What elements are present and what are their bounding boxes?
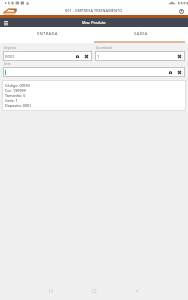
staticText: 001 - EMPRESA TREINAMENTO (65, 8, 123, 13)
staticText: Item (4, 62, 11, 66)
button[interactable]: Clear (176, 53, 183, 60)
button[interactable]: Clear (176, 69, 183, 76)
staticText: Quantidade (96, 46, 113, 50)
button[interactable]: Menu (2, 19, 10, 27)
button[interactable]: 0001 (3, 51, 92, 61)
staticText: Cor: 199999 (5, 88, 26, 93)
button[interactable]: 1 (95, 51, 185, 61)
button[interactable]: Scan with camera (3, 67, 185, 77)
staticText: Código: 00593 (5, 83, 30, 88)
staticText: 0001 (5, 53, 15, 59)
staticText: Grde: 1 (5, 98, 18, 103)
staticText: Tamanho: 0 (5, 93, 26, 98)
staticText: ENTRADA (37, 31, 58, 37)
button[interactable]: Scan with camera (167, 69, 174, 76)
staticText: Mov. Produto (82, 20, 106, 25)
staticText: 1 (97, 53, 100, 59)
staticText: SAÍDA (134, 31, 148, 37)
button[interactable]: Recents (46, 286, 56, 296)
button[interactable]: Home (89, 286, 99, 296)
button[interactable]: Clear (83, 53, 90, 60)
button[interactable]: ENTRADA (0, 27, 94, 41)
staticText: Deposito: 0001 (5, 103, 32, 108)
button[interactable]: SAÍDA (94, 27, 188, 41)
staticText: Deposito (4, 46, 17, 50)
button[interactable]: Scan with camera (74, 53, 81, 60)
button[interactable]: Back (132, 286, 142, 296)
button[interactable]: Sync (177, 7, 185, 15)
